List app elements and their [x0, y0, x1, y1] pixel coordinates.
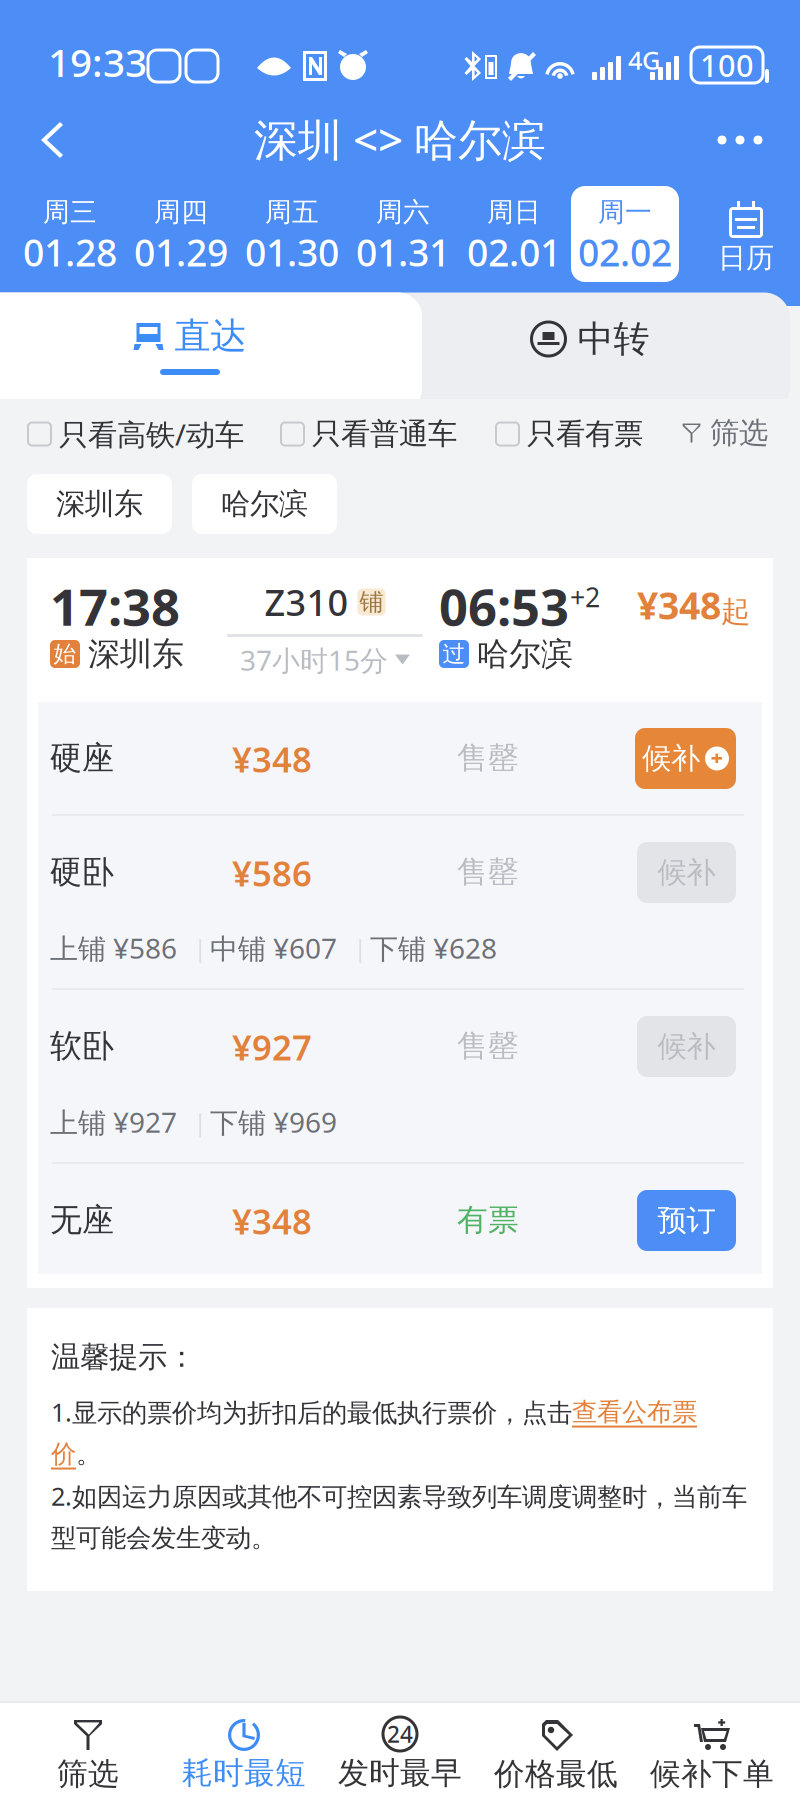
- staticText: 哈尔滨: [221, 486, 308, 522]
- button[interactable]: 周一: [571, 186, 679, 282]
- button[interactable]: 预订: [637, 1190, 736, 1251]
- staticText: ¥348: [232, 736, 312, 782]
- staticText: 下铺 ¥628: [370, 929, 497, 967]
- staticText: 耗时最短: [182, 1754, 306, 1792]
- button[interactable]: More: [700, 100, 780, 180]
- button[interactable]: 周四: [127, 186, 235, 282]
- staticText: 深圳东: [56, 486, 143, 522]
- button[interactable]: 哈尔滨: [192, 474, 337, 534]
- staticText: 4G: [628, 43, 660, 77]
- staticText: 深圳东: [88, 634, 184, 674]
- staticText: 过: [442, 640, 465, 668]
- staticText: 中铺 ¥607: [210, 929, 337, 967]
- staticText: 周日: [487, 196, 541, 228]
- staticText: 起: [721, 594, 750, 630]
- staticText: 1.显示的票价均为折扣后的最低执行票价，点击: [51, 1395, 572, 1429]
- staticText: 铺: [359, 587, 383, 617]
- staticText: 软卧: [50, 1026, 114, 1066]
- staticText: 只看普通车: [312, 416, 457, 452]
- staticText: 02.01: [467, 227, 561, 277]
- staticText: 周六: [376, 196, 430, 228]
- button[interactable]: 候补: [637, 842, 736, 903]
- button[interactable]: 候补下单: [632, 1705, 792, 1805]
- staticText: 价格最低: [494, 1755, 618, 1793]
- staticText: ¥927: [232, 1024, 312, 1070]
- staticText: 候补: [642, 740, 700, 776]
- staticText: 始: [53, 640, 76, 668]
- staticText: ¥586: [232, 850, 312, 896]
- staticText: 直达: [174, 314, 246, 358]
- staticText: 只看有票: [527, 416, 643, 452]
- staticText: 上铺 ¥586: [50, 929, 177, 967]
- staticText: 预订: [657, 1202, 715, 1238]
- staticText: 01.31: [356, 227, 450, 277]
- staticText: ¥348: [232, 1198, 312, 1244]
- staticText: 筛选: [57, 1755, 119, 1793]
- staticText: 37小时15分: [240, 641, 388, 679]
- staticText: 售罄: [457, 739, 519, 777]
- button[interactable]: 直达: [0, 292, 390, 385]
- button[interactable]: 筛选: [682, 413, 778, 453]
- staticText: 发时最早: [338, 1754, 462, 1792]
- button[interactable]: 候补: [637, 1016, 736, 1077]
- button[interactable]: 日历: [700, 190, 792, 284]
- button[interactable]: 价格最低: [476, 1705, 636, 1805]
- button[interactable]: 价: [51, 1438, 76, 1469]
- button[interactable]: 只看有票: [496, 413, 666, 455]
- staticText: 候补下单: [650, 1755, 774, 1793]
- staticText: 无座: [50, 1200, 114, 1240]
- staticText: 日历: [718, 241, 774, 275]
- staticText: 上铺 ¥927: [50, 1103, 177, 1141]
- staticText: 24: [387, 1719, 413, 1749]
- staticText: |: [193, 932, 206, 964]
- button[interactable]: 只看高铁/动车: [28, 413, 268, 455]
- button[interactable]: 周五: [238, 186, 346, 282]
- staticText: 周三: [43, 196, 97, 228]
- button[interactable]: 周三: [16, 186, 124, 282]
- staticText: 02.02: [578, 227, 672, 277]
- staticText: 01.29: [134, 227, 228, 277]
- staticText: 深圳 <> 哈尔滨: [254, 110, 546, 168]
- staticText: 价: [51, 1438, 76, 1469]
- button[interactable]: 耗时最短: [164, 1703, 324, 1803]
- staticText: 筛选: [710, 415, 768, 451]
- button[interactable]: 只看普通车: [281, 413, 481, 455]
- staticText: 。: [76, 1438, 101, 1469]
- button[interactable]: Back: [12, 100, 92, 180]
- staticText: 06:53: [439, 572, 569, 640]
- staticText: 只看高铁/动车: [59, 414, 244, 453]
- staticText: 2.如因运力原因或其他不可控因素导致列车调度调整时，当前车: [51, 1479, 747, 1513]
- button[interactable]: 查看公布票: [572, 1396, 697, 1427]
- staticText: |: [193, 1106, 206, 1138]
- button[interactable]: 周日: [460, 186, 568, 282]
- staticText: 周四: [154, 196, 208, 228]
- staticText: |: [353, 932, 366, 964]
- staticText: 01.28: [23, 227, 117, 277]
- button[interactable]: 深圳东: [27, 474, 172, 534]
- button[interactable]: 中转: [410, 292, 770, 385]
- staticText: 17:38: [50, 572, 180, 640]
- staticText: 温馨提示：: [51, 1339, 196, 1375]
- staticText: 候补: [657, 854, 715, 890]
- staticText: 哈尔滨: [477, 634, 573, 674]
- staticText: ¥348: [637, 580, 721, 630]
- staticText: 售罄: [457, 853, 519, 891]
- staticText: 查看公布票: [572, 1396, 697, 1427]
- staticText: 周五: [265, 196, 319, 228]
- staticText: 下铺 ¥969: [210, 1103, 337, 1141]
- button[interactable]: 周六: [349, 186, 457, 282]
- staticText: 售罄: [457, 1027, 519, 1065]
- staticText: 100: [700, 45, 754, 85]
- staticText: 型可能会发生变动。: [51, 1522, 276, 1553]
- button[interactable]: 候补: [635, 728, 736, 789]
- staticText: 中转: [577, 317, 649, 361]
- staticText: 硬卧: [50, 852, 114, 892]
- button[interactable]: 筛选: [8, 1705, 168, 1805]
- staticText: Z310: [264, 578, 348, 626]
- staticText: 有票: [457, 1201, 519, 1239]
- staticText: 硬座: [50, 738, 114, 778]
- button[interactable]: 24: [320, 1703, 480, 1803]
- staticText: +2: [570, 579, 600, 615]
- staticText: 01.30: [245, 227, 339, 277]
- staticText: 19:33: [48, 36, 147, 88]
